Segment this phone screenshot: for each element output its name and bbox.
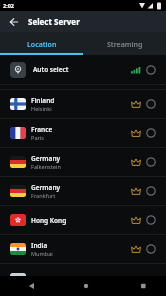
staticText: Auto select	[33, 65, 69, 74]
staticText: Paris	[31, 134, 44, 142]
button[interactable]: Location	[0, 34, 83, 55]
button[interactable]: France	[0, 119, 166, 147]
button[interactable]	[0, 11, 28, 32]
button[interactable]: India	[0, 235, 166, 263]
button[interactable]: Hong Kong	[0, 206, 166, 234]
button[interactable]: Auto select	[0, 55, 166, 84]
staticText: Germany	[31, 183, 61, 192]
staticText: Finland	[31, 96, 55, 105]
staticText: Falkenstein	[31, 163, 61, 171]
button[interactable]	[0, 276, 56, 296]
button[interactable]: Germany	[0, 148, 166, 176]
staticText: Select Server	[28, 16, 80, 27]
button[interactable]: Streaming	[83, 34, 166, 55]
button[interactable]: Finland	[0, 90, 166, 118]
staticText: Mumbai	[31, 250, 53, 258]
staticText: Helsinki	[31, 105, 52, 113]
staticText: Germany	[31, 154, 61, 163]
staticText: France	[31, 125, 53, 134]
staticText: Streaming	[107, 40, 143, 50]
staticText: Hong Kong	[31, 216, 67, 225]
staticText: 2:02	[3, 2, 14, 9]
staticText: Frankfurt	[31, 192, 56, 200]
button[interactable]	[111, 276, 166, 296]
button[interactable]	[56, 276, 111, 296]
staticText: India	[31, 241, 48, 250]
button[interactable]: Germany	[0, 177, 166, 205]
staticText: Location	[27, 40, 57, 50]
